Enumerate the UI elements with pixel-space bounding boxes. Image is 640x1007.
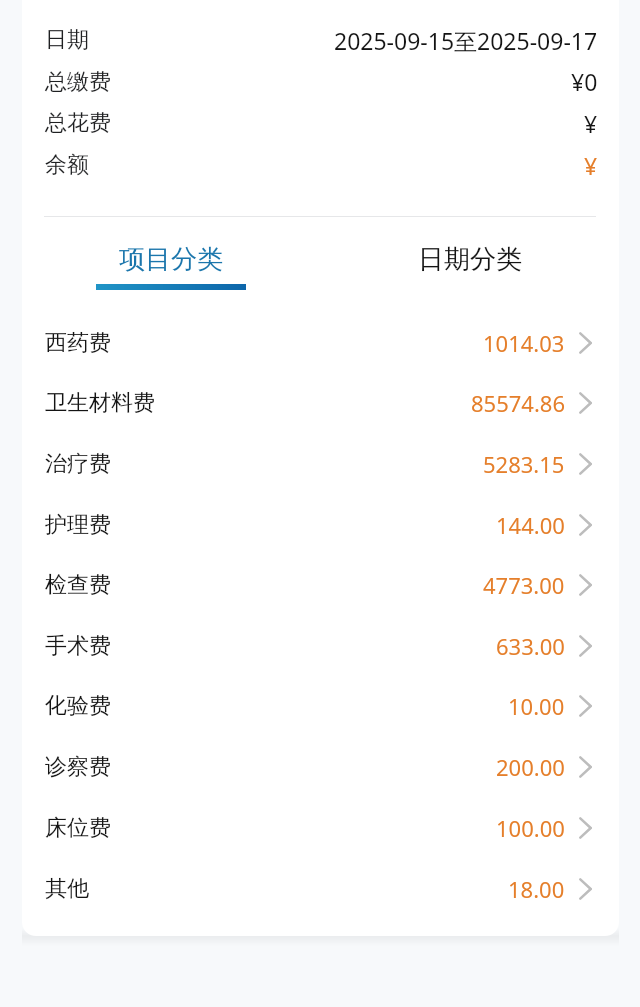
button[interactable]: 治疗费 [22,433,619,494]
staticText: 检查费 [45,571,111,599]
button[interactable]: 检查费 [22,555,619,615]
button[interactable]: 其他 [22,858,619,919]
staticText: 护理费 [45,511,111,539]
other: 查看检查费明细 [579,574,592,596]
button[interactable]: 卫生材料费 [22,373,619,433]
staticText: 卫生材料费 [45,389,155,417]
staticText: 治疗费 [45,450,111,478]
staticText: 10.00 [508,691,565,721]
staticText: 诊察费 [45,753,111,781]
other: 查看卫生材料费明细 [579,392,592,414]
other: 查看西药费明细 [579,332,592,354]
other: 查看化验费明细 [579,695,592,717]
staticText: 4773.00 [483,570,565,600]
staticText: 85574.86 [471,388,565,418]
button[interactable]: 日期分类 [320,217,619,312]
button[interactable]: 总缴费 [22,61,619,102]
button[interactable]: 余额 [22,144,619,186]
button[interactable]: 日期 [22,19,619,61]
staticText: 其他 [45,875,89,903]
staticText: 项目分类 [119,243,223,276]
other: 查看手术费明细 [579,635,592,657]
other: 查看床位费明细 [579,817,592,839]
staticText: 手术费 [45,632,111,660]
staticText: 日期 [45,26,89,54]
button[interactable]: 诊察费 [22,736,619,797]
staticText: 144.00 [496,510,565,540]
staticText: 总花费 [45,109,111,137]
staticText: 化验费 [45,692,111,720]
staticText: 余额 [45,151,89,179]
button[interactable]: 化验费 [22,676,619,736]
staticText: 633.00 [496,631,565,661]
staticText: ¥ [584,108,598,139]
other: 查看护理费明细 [579,514,592,536]
staticText: 床位费 [45,814,111,842]
button[interactable]: 项目分类 [22,217,320,312]
staticText: 100.00 [496,813,565,843]
staticText: 5283.15 [483,449,565,479]
staticText: 2025-09-15至2025-09-17 [334,25,598,56]
staticText: 西药费 [45,329,111,357]
staticText: ¥ [584,150,598,181]
button[interactable]: 护理费 [22,494,619,555]
button[interactable]: 手术费 [22,615,619,676]
staticText: 18.00 [508,874,565,904]
button[interactable]: 总花费 [22,102,619,144]
staticText: 日期分类 [418,243,522,276]
staticText: 总缴费 [45,68,111,96]
other: 查看治疗费明细 [579,453,592,475]
other: 查看其他明细 [579,878,592,900]
button[interactable]: 西药费 [22,312,619,373]
staticText: 1014.03 [483,328,565,358]
staticText: ¥0 [571,66,598,97]
button[interactable]: 床位费 [22,797,619,858]
staticText: 200.00 [496,752,565,782]
other: 查看诊察费明细 [579,756,592,778]
